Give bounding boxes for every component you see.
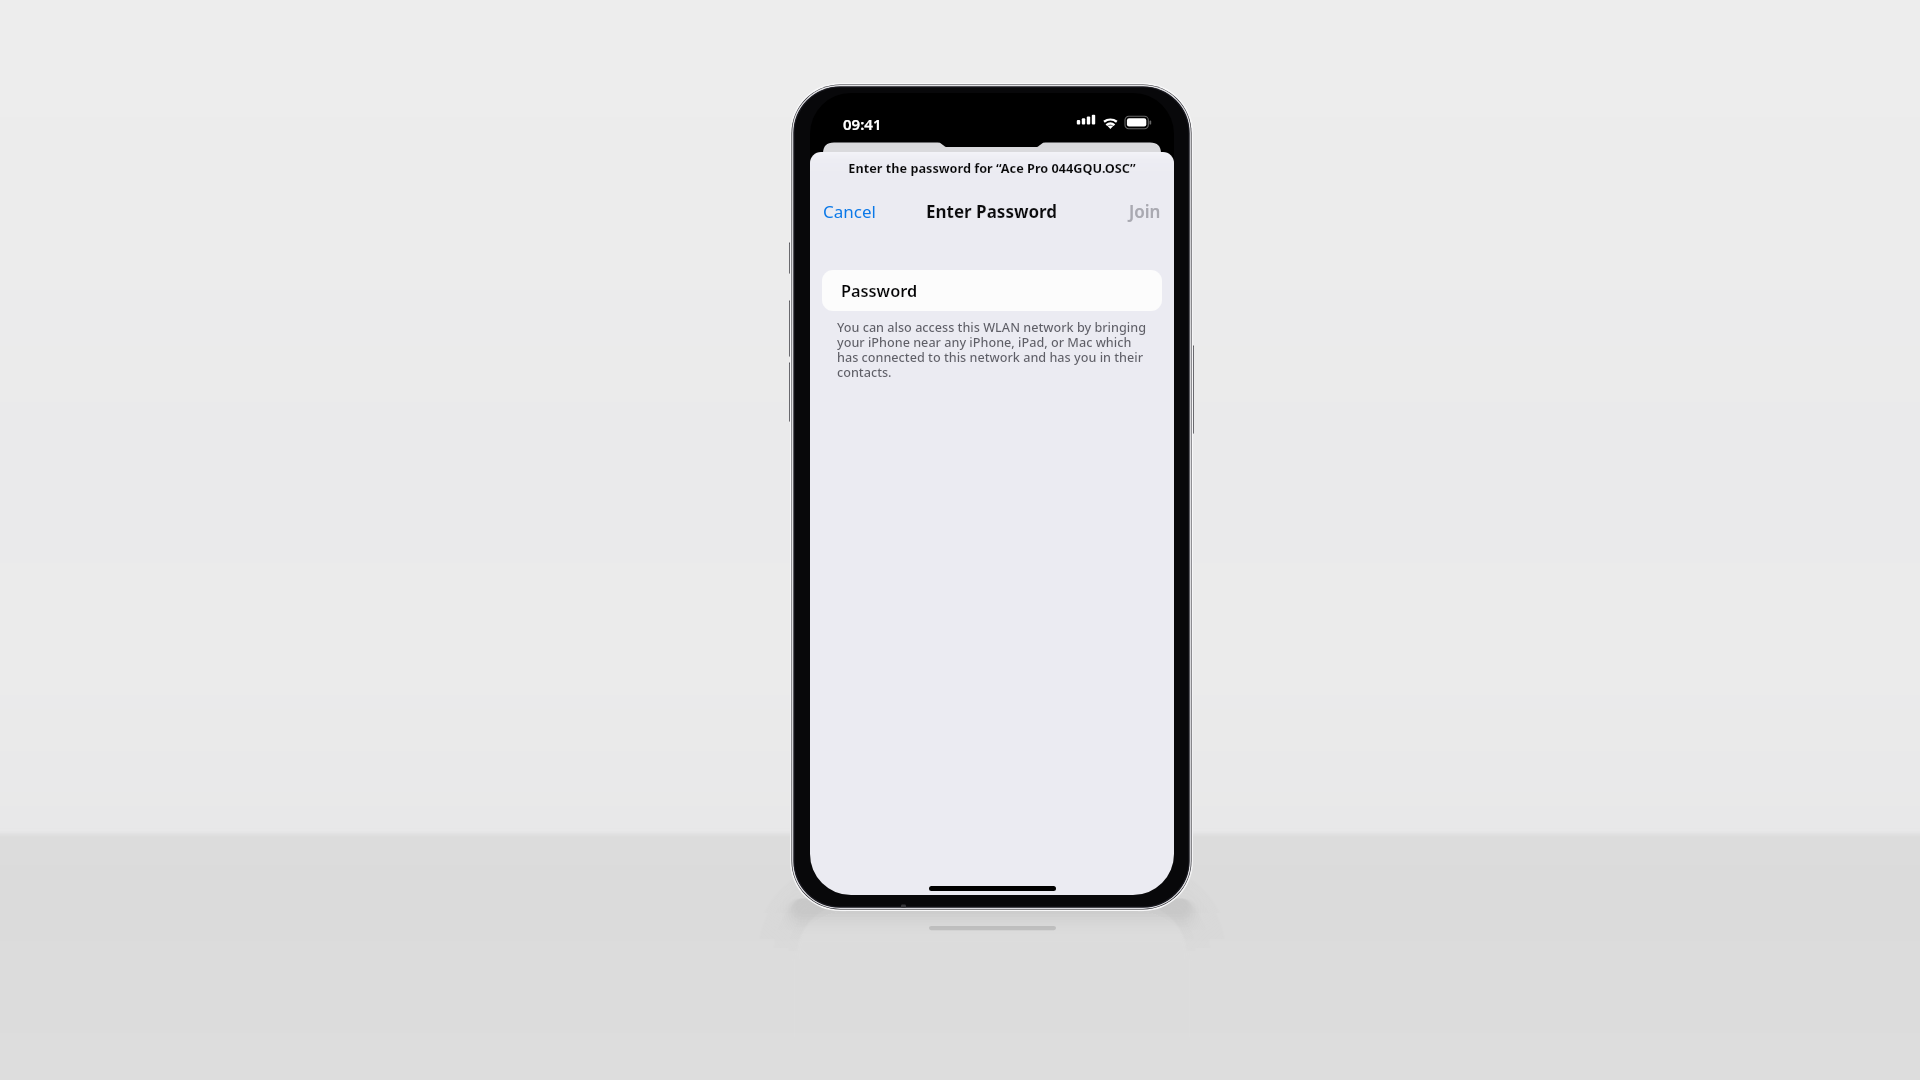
staticText: Cancel: [823, 200, 876, 223]
staticText: Password: [841, 280, 918, 302]
staticText: Join: [1129, 200, 1161, 223]
staticText: Enter the password for “Ace Pro 044GQU.O…: [810, 159, 1174, 176]
button[interactable]: Join: [1129, 200, 1161, 223]
staticText: 09:41: [843, 114, 882, 134]
button[interactable]: Cancel: [823, 200, 876, 223]
button[interactable]: Password: [822, 270, 1162, 311]
staticText: You can also access this WLAN network by…: [837, 318, 1146, 381]
staticText: Enter Password: [926, 200, 1058, 223]
